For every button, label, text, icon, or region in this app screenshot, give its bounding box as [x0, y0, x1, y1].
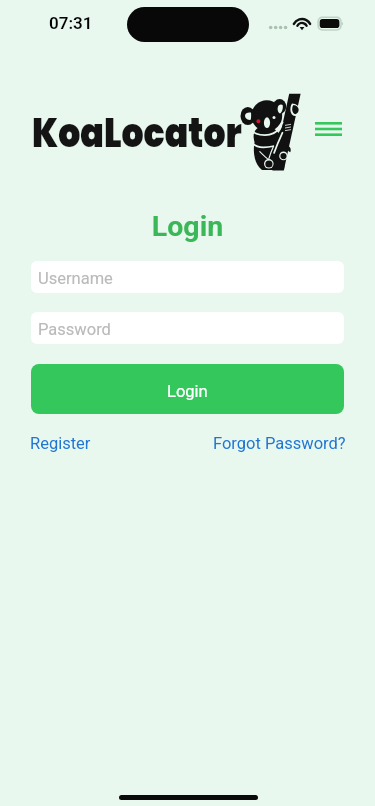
staticText: Forgot Password?: [213, 434, 346, 453]
staticText: Login: [0, 210, 375, 243]
staticText: Username: [38, 269, 113, 288]
button[interactable]: Menu: [306, 111, 350, 147]
button[interactable]: Register: [30, 432, 91, 455]
button[interactable]: Password: [31, 312, 344, 344]
button[interactable]: Forgot Password?: [213, 432, 346, 455]
button[interactable]: Username: [31, 261, 344, 293]
staticText: KoaLocator: [32, 105, 242, 161]
staticText: Password: [38, 320, 111, 339]
staticText: Login: [167, 382, 208, 401]
staticText: Register: [30, 434, 91, 453]
staticText: 07:31: [49, 13, 93, 33]
button[interactable]: Login: [31, 364, 344, 414]
